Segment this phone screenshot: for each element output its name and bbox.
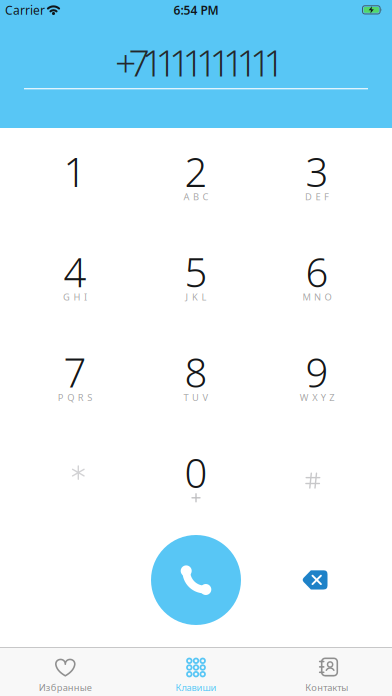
staticText: Клавиши bbox=[175, 681, 216, 694]
staticText: Z bbox=[329, 391, 334, 403]
button[interactable]: 8 bbox=[141, 337, 251, 433]
staticText: A bbox=[183, 190, 189, 203]
staticText: T bbox=[183, 391, 188, 403]
staticText: Избранные bbox=[39, 681, 92, 694]
staticText: 3 bbox=[305, 145, 328, 198]
button[interactable]: # bbox=[262, 437, 372, 533]
staticText: V bbox=[202, 391, 208, 403]
staticText: W bbox=[300, 391, 309, 403]
staticText: B bbox=[193, 190, 199, 203]
staticText: 8 bbox=[184, 345, 207, 399]
button[interactable]: Call bbox=[151, 535, 241, 625]
staticText: 7 bbox=[63, 345, 86, 399]
staticText: P bbox=[58, 391, 64, 403]
staticText: C bbox=[202, 190, 208, 203]
button[interactable]: 5 bbox=[141, 236, 251, 332]
staticText: K bbox=[192, 291, 198, 303]
staticText: L bbox=[201, 291, 206, 303]
button[interactable]: 3 bbox=[262, 136, 372, 232]
staticText: 5 bbox=[184, 245, 207, 298]
button[interactable]: Контакты bbox=[262, 647, 392, 696]
button[interactable]: Клавиши bbox=[131, 647, 261, 696]
staticText: E bbox=[315, 190, 320, 203]
staticText: S bbox=[87, 391, 92, 403]
button[interactable]: 2 bbox=[141, 136, 251, 232]
staticText: 4 bbox=[63, 245, 86, 298]
staticText: 9 bbox=[305, 345, 328, 399]
staticText: N bbox=[314, 291, 321, 303]
button[interactable]: Избранные bbox=[0, 647, 130, 696]
staticText: Y bbox=[321, 391, 326, 403]
staticText: O bbox=[324, 291, 331, 303]
staticText: R bbox=[78, 391, 84, 403]
button[interactable]: 4 bbox=[20, 236, 130, 332]
staticText: D bbox=[305, 190, 312, 203]
staticText: G bbox=[63, 291, 70, 303]
staticText: U bbox=[192, 391, 199, 403]
staticText: F bbox=[324, 190, 329, 203]
staticText: M bbox=[302, 291, 310, 303]
staticText: I bbox=[84, 291, 87, 303]
button[interactable]: 7 bbox=[20, 337, 130, 433]
button[interactable]: 6 bbox=[262, 236, 372, 332]
staticText: 1 bbox=[63, 145, 86, 198]
staticText: Контакты bbox=[305, 681, 348, 694]
staticText: 2 bbox=[184, 145, 207, 198]
staticText: X bbox=[312, 391, 317, 403]
staticText: 6 bbox=[305, 245, 328, 298]
staticText: 0 bbox=[184, 446, 207, 499]
button[interactable]: 9 bbox=[262, 337, 372, 433]
staticText: +71111111111 bbox=[115, 37, 285, 87]
staticText: 6:54 PM bbox=[173, 2, 218, 18]
button[interactable]: 1 bbox=[20, 136, 130, 232]
staticText: Carrier bbox=[5, 2, 45, 18]
button[interactable]: Delete bbox=[293, 560, 337, 600]
staticText: Q bbox=[67, 391, 74, 403]
staticText: J bbox=[185, 291, 188, 303]
staticText: H bbox=[73, 291, 80, 303]
button[interactable]: 0 bbox=[141, 437, 251, 533]
